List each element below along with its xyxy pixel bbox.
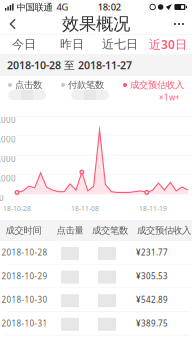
button[interactable]: 近30日: [144, 34, 192, 54]
staticText: 18:02: [98, 1, 121, 13]
staticText: 2018-10-31: [1, 318, 47, 329]
staticText: 18-11-08: [71, 204, 99, 213]
button[interactable]: Back: [0, 14, 26, 34]
staticText: ¥231.77: [136, 247, 168, 258]
staticText: ¥305.53: [136, 271, 168, 281]
staticText: ¥542.89: [136, 294, 168, 305]
staticText: 效果概况: [62, 13, 130, 35]
staticText: 中国联通 4G: [14, 1, 69, 13]
staticText: 成交预估收入: [137, 225, 191, 236]
button[interactable]: 2018-10-30: [0, 288, 192, 312]
staticText: 近七日: [102, 37, 138, 52]
staticText: ,000: [0, 114, 16, 125]
staticText: 昨日: [60, 37, 84, 52]
staticText: 点击量: [56, 225, 83, 236]
staticText: 今日: [12, 37, 36, 52]
staticText: 付款笔数: [68, 79, 104, 91]
staticText: 2018-10-28 至 2018-11-27: [7, 58, 132, 72]
button[interactable]: 2018-10-31: [0, 312, 192, 335]
staticText: 成交预估收入: [130, 79, 184, 91]
staticText: ,000: [0, 173, 16, 184]
staticText: 点击数: [15, 79, 42, 91]
staticText: 2018-10-29: [1, 271, 47, 281]
button[interactable]: 近七日: [96, 34, 144, 54]
staticText: 近30日: [149, 36, 187, 52]
staticText: ¥389.75: [136, 318, 168, 329]
staticText: 成交时间: [5, 225, 41, 236]
staticText: ,000: [0, 153, 16, 164]
staticText: 18-11-19: [139, 204, 167, 213]
staticText: 2018-10-28: [1, 247, 47, 258]
button[interactable]: 2018-10-29: [0, 265, 192, 288]
staticText: ,000: [0, 134, 16, 145]
staticText: ×1w+: [159, 92, 180, 103]
button[interactable]: More options: [166, 14, 192, 34]
button[interactable]: 今日: [0, 34, 48, 54]
staticText: 0: [0, 192, 4, 203]
staticText: 18-10-28: [3, 204, 31, 213]
button[interactable]: 2018-10-28: [0, 241, 192, 265]
staticText: 2018-10-30: [1, 294, 47, 305]
button[interactable]: 昨日: [48, 34, 96, 54]
staticText: 成交笔数: [92, 225, 128, 236]
